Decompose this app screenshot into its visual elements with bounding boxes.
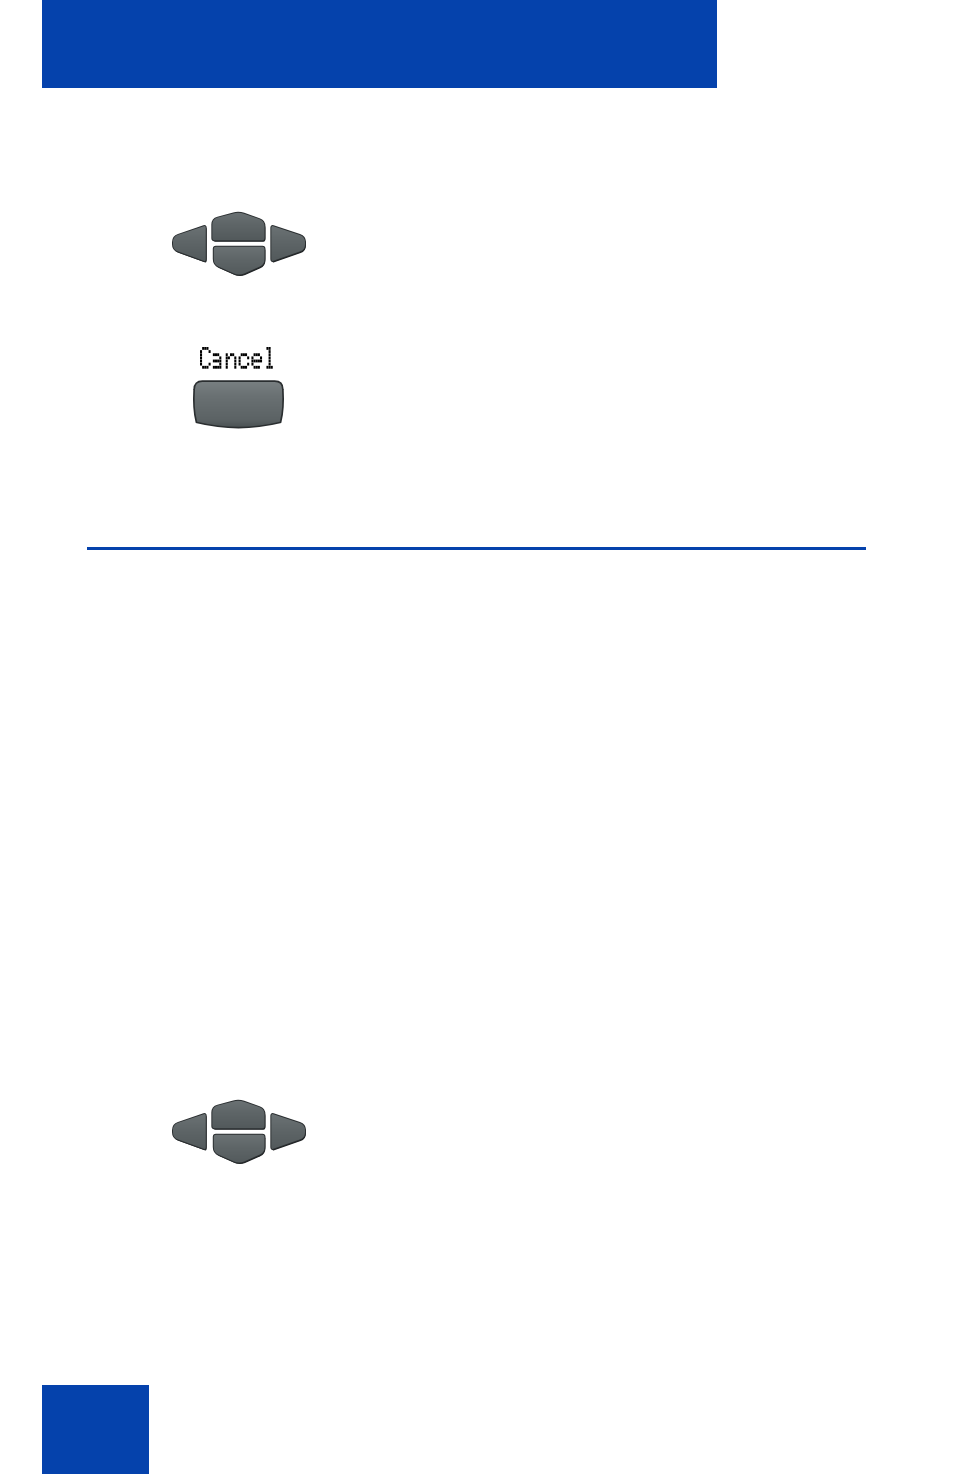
button[interactable]: Navigation cluster xyxy=(173,212,305,276)
button[interactable]: Cancel key xyxy=(195,382,282,429)
button[interactable]: Navigation cluster xyxy=(173,1100,305,1164)
